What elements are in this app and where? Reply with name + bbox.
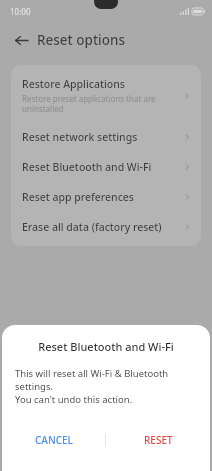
staticText: Reset Bluetooth and Wi-Fi: [22, 160, 152, 174]
staticText: Reset Bluetooth and Wi-Fi: [2, 339, 210, 354]
staticText: RESET: [144, 433, 173, 447]
button[interactable]: RESET: [106, 425, 210, 455]
staticText: 10:00: [10, 6, 31, 17]
button[interactable]: Reset network settings: [11, 122, 201, 152]
button[interactable]: Reset app preferences: [11, 182, 201, 212]
staticText: Reset options: [37, 31, 125, 49]
button[interactable]: Restore Applications: [11, 69, 201, 122]
staticText: Erase all data (factory reset): [22, 220, 162, 234]
button[interactable]: CANCEL: [2, 425, 105, 455]
staticText: Reset network settings: [22, 130, 138, 144]
button[interactable]: Reset Bluetooth and Wi-Fi: [11, 152, 201, 182]
button[interactable]: Back: [11, 30, 31, 50]
staticText: Reset app preferences: [22, 190, 134, 204]
staticText: Restore Applications: [22, 77, 125, 91]
staticText: This will reset all Wi-Fi & Bluetooth se…: [15, 367, 197, 406]
staticText: CANCEL: [35, 433, 73, 447]
staticText: Restore preset applications that are uni…: [22, 93, 182, 114]
button[interactable]: Erase all data (factory reset): [11, 212, 201, 242]
